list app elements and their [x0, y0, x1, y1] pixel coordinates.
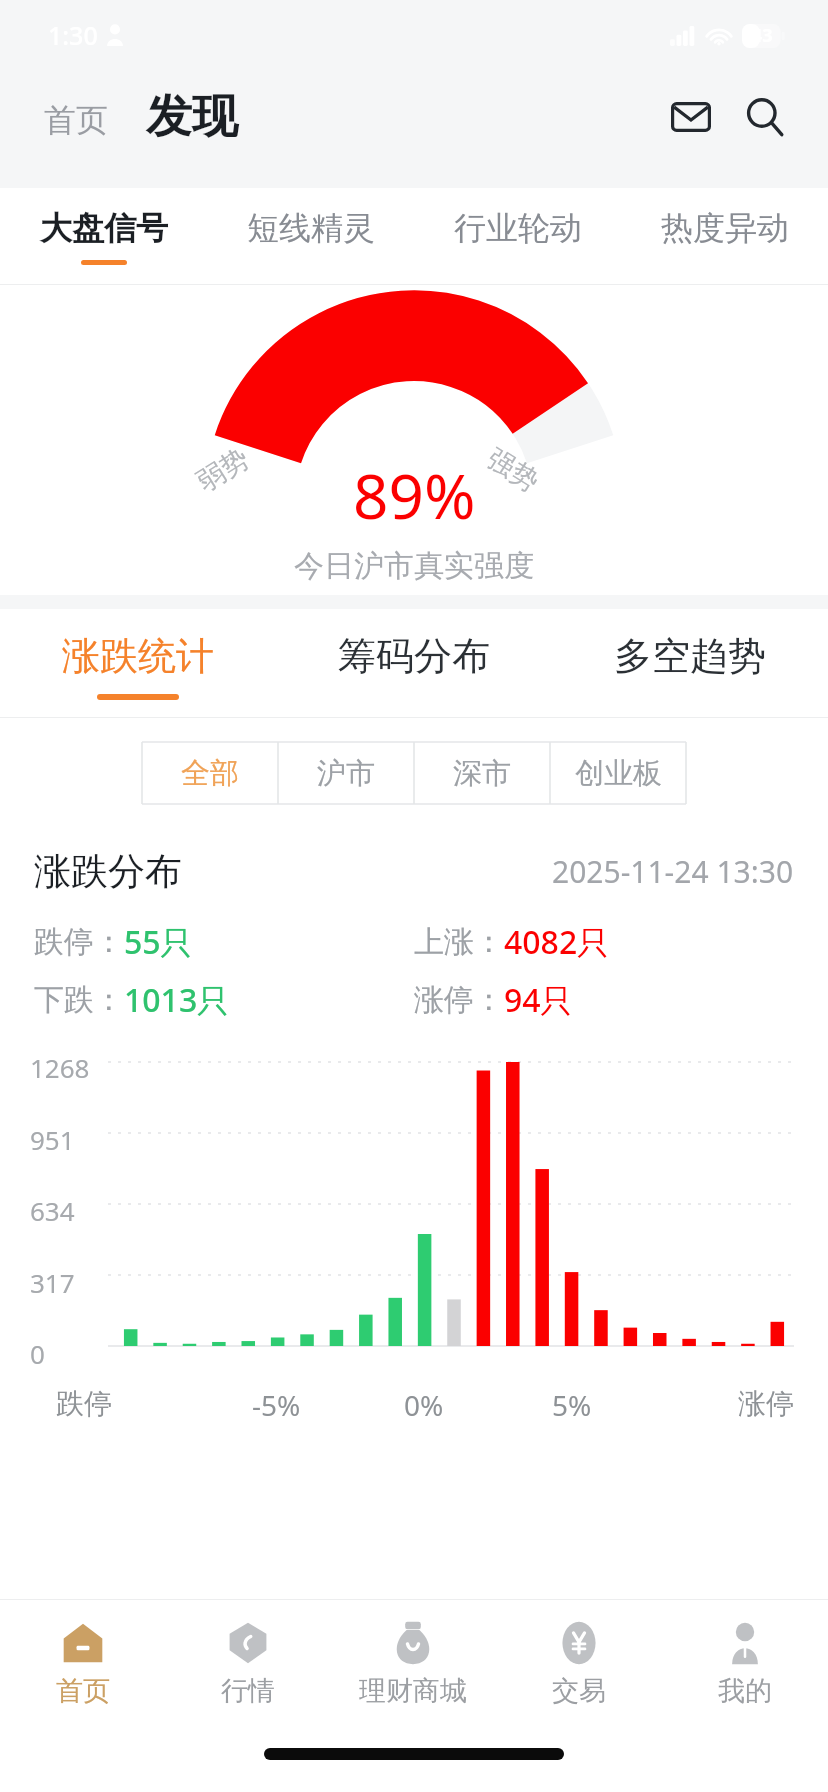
button[interactable]: 多空趋势	[552, 609, 828, 717]
staticText: 下跌：	[34, 981, 124, 1019]
button[interactable]: 我的	[662, 1600, 828, 1728]
staticText: 深市	[453, 755, 511, 792]
staticText: 筹码分布	[338, 632, 490, 680]
staticText: 跌停：	[34, 923, 124, 961]
staticText: 跌停	[56, 1386, 112, 1421]
staticText: 首页	[56, 1674, 110, 1708]
staticText: 94只	[504, 978, 573, 1022]
staticText: 创业板	[575, 755, 662, 792]
staticText: 0%	[404, 1386, 444, 1424]
staticText: 短线精灵	[247, 208, 375, 248]
staticText: 多空趋势	[614, 632, 766, 680]
staticText: 1:30	[48, 18, 98, 52]
staticText: 2025-11-24 13:30	[552, 851, 794, 892]
staticText: 55只	[124, 920, 193, 964]
button[interactable]: 热度异动	[621, 188, 828, 284]
staticText: 涨停：	[414, 981, 504, 1019]
staticText: 89%	[353, 453, 476, 537]
staticText: 热度异动	[661, 208, 789, 248]
button[interactable]: 行情	[165, 1600, 330, 1728]
button[interactable]: 大盘信号	[0, 188, 207, 284]
staticText: 行业轮动	[454, 208, 582, 248]
staticText: 全部	[181, 755, 239, 792]
staticText: 首页	[44, 100, 108, 140]
button[interactable]: 筹码分布	[276, 609, 552, 717]
button[interactable]: Search	[738, 90, 792, 144]
button[interactable]: 发现	[142, 88, 242, 146]
button[interactable]: Messages	[664, 90, 718, 144]
staticText: 317	[30, 1265, 75, 1300]
staticText: 发现	[146, 88, 238, 146]
button[interactable]: 交易	[496, 1600, 662, 1728]
button[interactable]: 行业轮动	[414, 188, 621, 284]
staticText: 我的	[718, 1674, 772, 1708]
button[interactable]: 短线精灵	[207, 188, 414, 284]
staticText: 涨停	[738, 1386, 794, 1421]
button[interactable]: 涨跌统计	[0, 609, 276, 717]
staticText: 理财商城	[359, 1674, 467, 1708]
staticText: 0	[30, 1336, 45, 1371]
staticText: 沪市	[317, 755, 375, 792]
staticText: 1013只	[124, 978, 230, 1022]
button[interactable]: 理财商城	[330, 1600, 496, 1728]
staticText: 强势	[481, 441, 545, 499]
staticText: -5%	[252, 1386, 301, 1424]
button[interactable]: 全部	[142, 742, 278, 804]
staticText: 951	[30, 1122, 75, 1157]
staticText: 上涨：	[414, 923, 504, 961]
staticText: 634	[30, 1193, 75, 1228]
staticText: 行情	[221, 1674, 275, 1708]
button[interactable]: 首页	[36, 94, 116, 146]
staticText: 涨跌统计	[62, 632, 214, 680]
staticText: 交易	[552, 1674, 606, 1708]
staticText: 涨跌分布	[34, 848, 182, 895]
staticText: 今日沪市真实强度	[294, 547, 534, 585]
button[interactable]: 沪市	[278, 742, 414, 804]
button[interactable]: 深市	[414, 742, 550, 804]
staticText: 5%	[552, 1386, 592, 1424]
button[interactable]: 创业板	[550, 742, 686, 804]
staticText: 1268	[30, 1050, 90, 1085]
staticText: 大盘信号	[40, 208, 168, 248]
staticText: 弱势	[191, 441, 255, 499]
staticText: 4082只	[504, 920, 610, 964]
button[interactable]: 首页	[0, 1600, 165, 1728]
staticText: 43	[752, 23, 773, 48]
